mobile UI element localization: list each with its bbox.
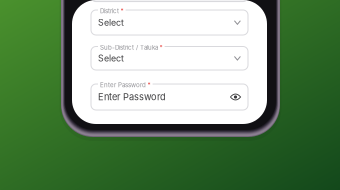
button[interactable]: Enter Password [91,84,248,110]
staticText: Enter Password [100,81,146,89]
staticText: District [100,7,119,15]
staticText: * [121,7,124,15]
staticText: Select [98,17,124,28]
button[interactable]: Select [91,46,248,70]
staticText: * [148,81,151,89]
staticText: Sub-District / Taluka [100,44,158,51]
staticText: Enter Password [98,91,166,102]
staticText: * [160,44,163,51]
staticText: Select [98,53,124,63]
button[interactable]: Select [91,10,248,35]
